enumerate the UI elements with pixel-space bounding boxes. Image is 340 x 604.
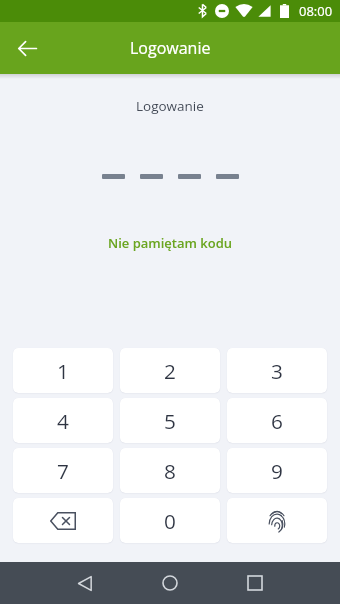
button[interactable]: 7 [13,448,113,493]
button[interactable]: Nie pamiętam kodu [98,229,243,257]
button[interactable]: Backspace [13,498,113,543]
staticText: 4 [57,407,69,435]
staticText: Logowanie [130,37,211,59]
staticText: 5 [164,407,176,435]
button[interactable]: Home [148,562,192,604]
staticText: 1 [57,357,69,385]
staticText: 3 [271,357,283,385]
button[interactable]: 4 [13,398,113,443]
button[interactable]: 8 [120,448,220,493]
staticText: 08:00 [299,2,333,20]
button[interactable]: 6 [227,398,327,443]
button[interactable]: 0 [120,498,220,543]
staticText: 0 [164,507,176,535]
staticText: Nie pamiętam kodu [108,234,233,252]
button[interactable]: Back [63,562,107,604]
staticText: 9 [271,457,283,485]
button[interactable]: 5 [120,398,220,443]
button[interactable]: Recents [233,562,277,604]
staticText: 2 [164,357,176,385]
button[interactable]: 3 [227,348,327,393]
staticText: 7 [57,457,69,485]
staticText: 8 [164,457,176,485]
staticText: 6 [271,407,283,435]
button[interactable]: Fingerprint [227,498,327,543]
staticText: Logowanie [136,97,204,115]
button[interactable]: 2 [120,348,220,393]
button[interactable]: 1 [13,348,113,393]
button[interactable]: 9 [227,448,327,493]
button[interactable]: Back [9,30,45,66]
